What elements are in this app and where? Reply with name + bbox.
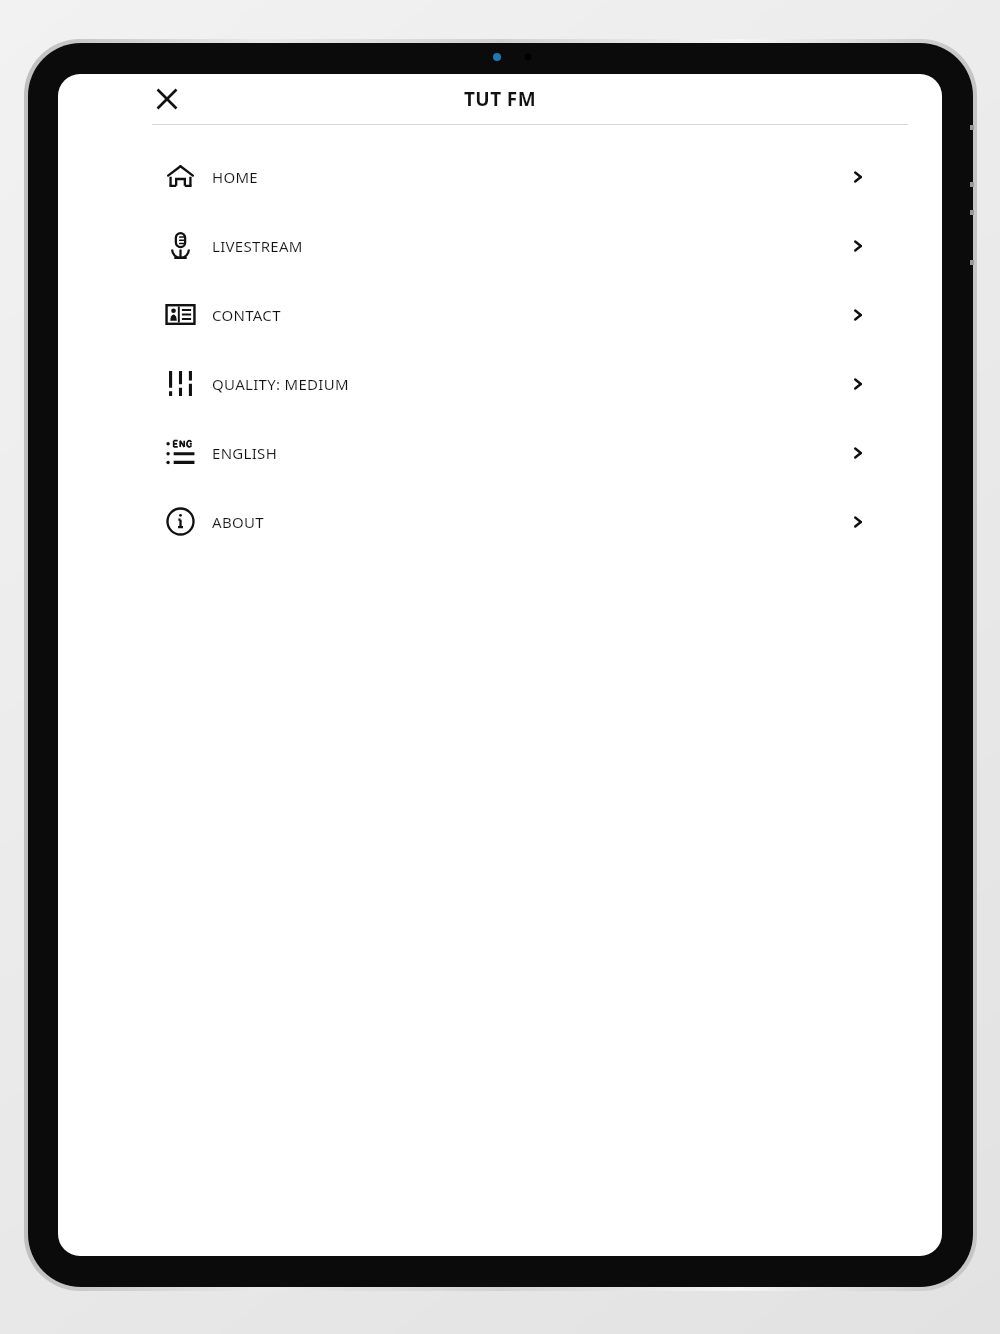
staticText: TUT FM	[464, 86, 536, 112]
staticText: ENGLISH	[212, 443, 278, 463]
button[interactable]: HOME	[58, 142, 942, 211]
staticText: QUALITY: MEDIUM	[212, 374, 349, 394]
staticText: HOME	[212, 167, 258, 187]
button[interactable]: ENGLISH	[58, 418, 942, 487]
button[interactable]: ABOUT	[58, 487, 942, 556]
staticText: CONTACT	[212, 305, 281, 325]
staticText: LIVESTREAM	[212, 236, 303, 256]
button[interactable]: CONTACT	[58, 280, 942, 349]
button[interactable]: QUALITY: MEDIUM	[58, 349, 942, 418]
staticText: ABOUT	[212, 512, 264, 532]
button[interactable]: LIVESTREAM	[58, 211, 942, 280]
button[interactable]: Close	[144, 76, 190, 122]
